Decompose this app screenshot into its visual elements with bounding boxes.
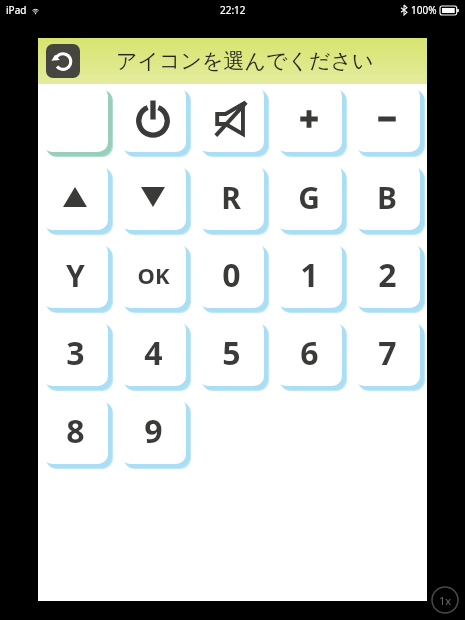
button[interactable]: Volume down — [354, 86, 427, 164]
button[interactable]: 5 — [198, 320, 276, 398]
staticText: 9 — [144, 409, 163, 453]
staticText: 8 — [66, 409, 85, 453]
button[interactable]: Up — [42, 164, 120, 242]
staticText: Y — [66, 255, 85, 296]
button[interactable]: 4 — [120, 320, 198, 398]
button[interactable]: G — [276, 164, 354, 242]
button[interactable]: Y — [42, 242, 120, 320]
staticText: 1x — [439, 593, 452, 608]
button[interactable]: 2 — [354, 242, 427, 320]
staticText: アイコンを選んでください — [116, 48, 374, 74]
button[interactable]: 8 — [42, 398, 120, 476]
button[interactable]: 0 — [198, 242, 276, 320]
staticText: 6 — [300, 331, 319, 375]
staticText: 2 — [378, 253, 397, 297]
button[interactable]: Mute — [198, 86, 276, 164]
button[interactable]: 1x scale — [431, 586, 459, 614]
staticText: 5 — [222, 331, 241, 375]
staticText: 7 — [378, 331, 397, 375]
button[interactable]: Back — [46, 44, 80, 78]
staticText: iPad — [6, 3, 27, 17]
button[interactable]: 9 — [120, 398, 198, 476]
staticText: G — [298, 177, 320, 218]
button[interactable]: 7 — [354, 320, 427, 398]
button[interactable]: Power — [120, 86, 198, 164]
button[interactable]: Volume up — [276, 86, 354, 164]
staticText: 100% — [411, 3, 437, 17]
button[interactable]: Down — [120, 164, 198, 242]
button[interactable]: None — [42, 86, 120, 164]
button[interactable]: 3 — [42, 320, 120, 398]
staticText: 3 — [66, 331, 85, 375]
button[interactable]: OK — [120, 242, 198, 320]
staticText: 22:12 — [220, 3, 246, 17]
button[interactable]: B — [354, 164, 427, 242]
staticText: 1 — [300, 253, 319, 297]
staticText: OK — [137, 260, 170, 290]
button[interactable]: R — [198, 164, 276, 242]
staticText: R — [221, 177, 241, 218]
staticText: 0 — [222, 253, 241, 297]
button[interactable]: 1 — [276, 242, 354, 320]
button[interactable]: 6 — [276, 320, 354, 398]
staticText: 4 — [144, 331, 163, 375]
staticText: B — [377, 177, 397, 218]
